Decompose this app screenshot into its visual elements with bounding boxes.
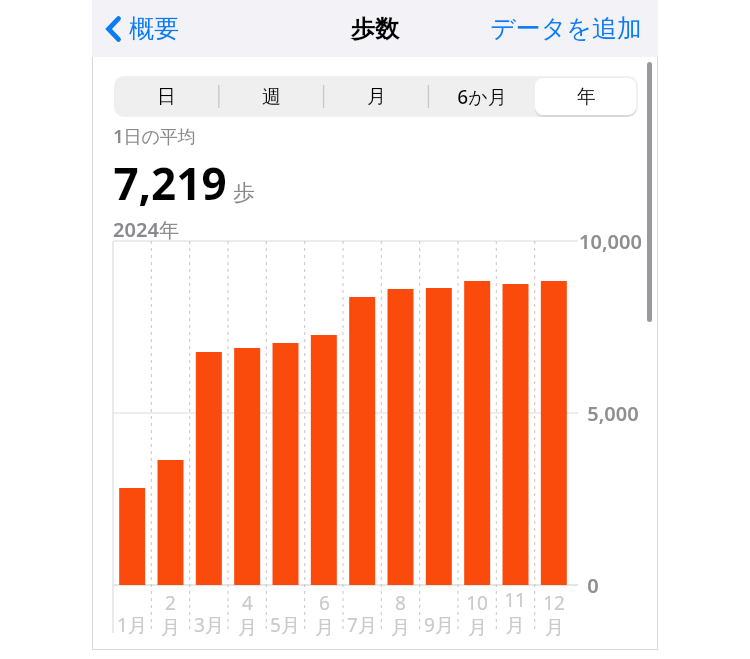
staticText: 月 (468, 616, 487, 640)
staticText: 0 (587, 572, 599, 599)
staticText: 12 (543, 590, 565, 616)
staticText: 月 (161, 616, 180, 640)
staticText: 月 (391, 616, 410, 640)
button[interactable]: データを追加 (486, 5, 646, 52)
staticText: 歩数 (351, 14, 399, 44)
button[interactable]: 日 (114, 76, 219, 117)
button[interactable]: 6か月 (429, 76, 534, 117)
staticText: 月 (315, 616, 334, 640)
staticText: 10,000 (579, 228, 642, 255)
staticText: 9月 (424, 612, 454, 638)
staticText: 6 (319, 590, 330, 616)
staticText: 1日の平均 (113, 124, 196, 149)
staticText: データを追加 (490, 13, 642, 44)
staticText: 月 (367, 85, 386, 109)
staticText: 8 (395, 590, 406, 616)
button[interactable]: 月 (324, 76, 429, 117)
staticText: 1月 (117, 612, 147, 638)
staticText: 年 (577, 85, 596, 109)
staticText: 日 (157, 85, 176, 109)
staticText: 5,000 (587, 400, 639, 427)
staticText: 6か月 (457, 84, 507, 110)
staticText: 7月 (347, 612, 377, 638)
staticText: 3月 (194, 612, 224, 638)
staticText: 10 (466, 590, 488, 616)
other: 戻る (106, 16, 122, 42)
staticText: 11月 (496, 587, 534, 638)
staticText: 2 (165, 590, 176, 616)
staticText: 5月 (270, 612, 300, 638)
button[interactable]: 年 (534, 76, 638, 117)
staticText: 7,219 (113, 153, 227, 213)
button[interactable]: 戻る (100, 7, 185, 50)
staticText: 週 (262, 85, 281, 109)
staticText: 歩 (233, 179, 255, 207)
staticText: 2024年 (113, 216, 179, 243)
staticText: 月 (545, 616, 564, 640)
staticText: 4 (242, 590, 253, 616)
button[interactable]: 週 (219, 76, 324, 117)
staticText: 概要 (129, 13, 179, 44)
staticText: 月 (238, 616, 257, 640)
